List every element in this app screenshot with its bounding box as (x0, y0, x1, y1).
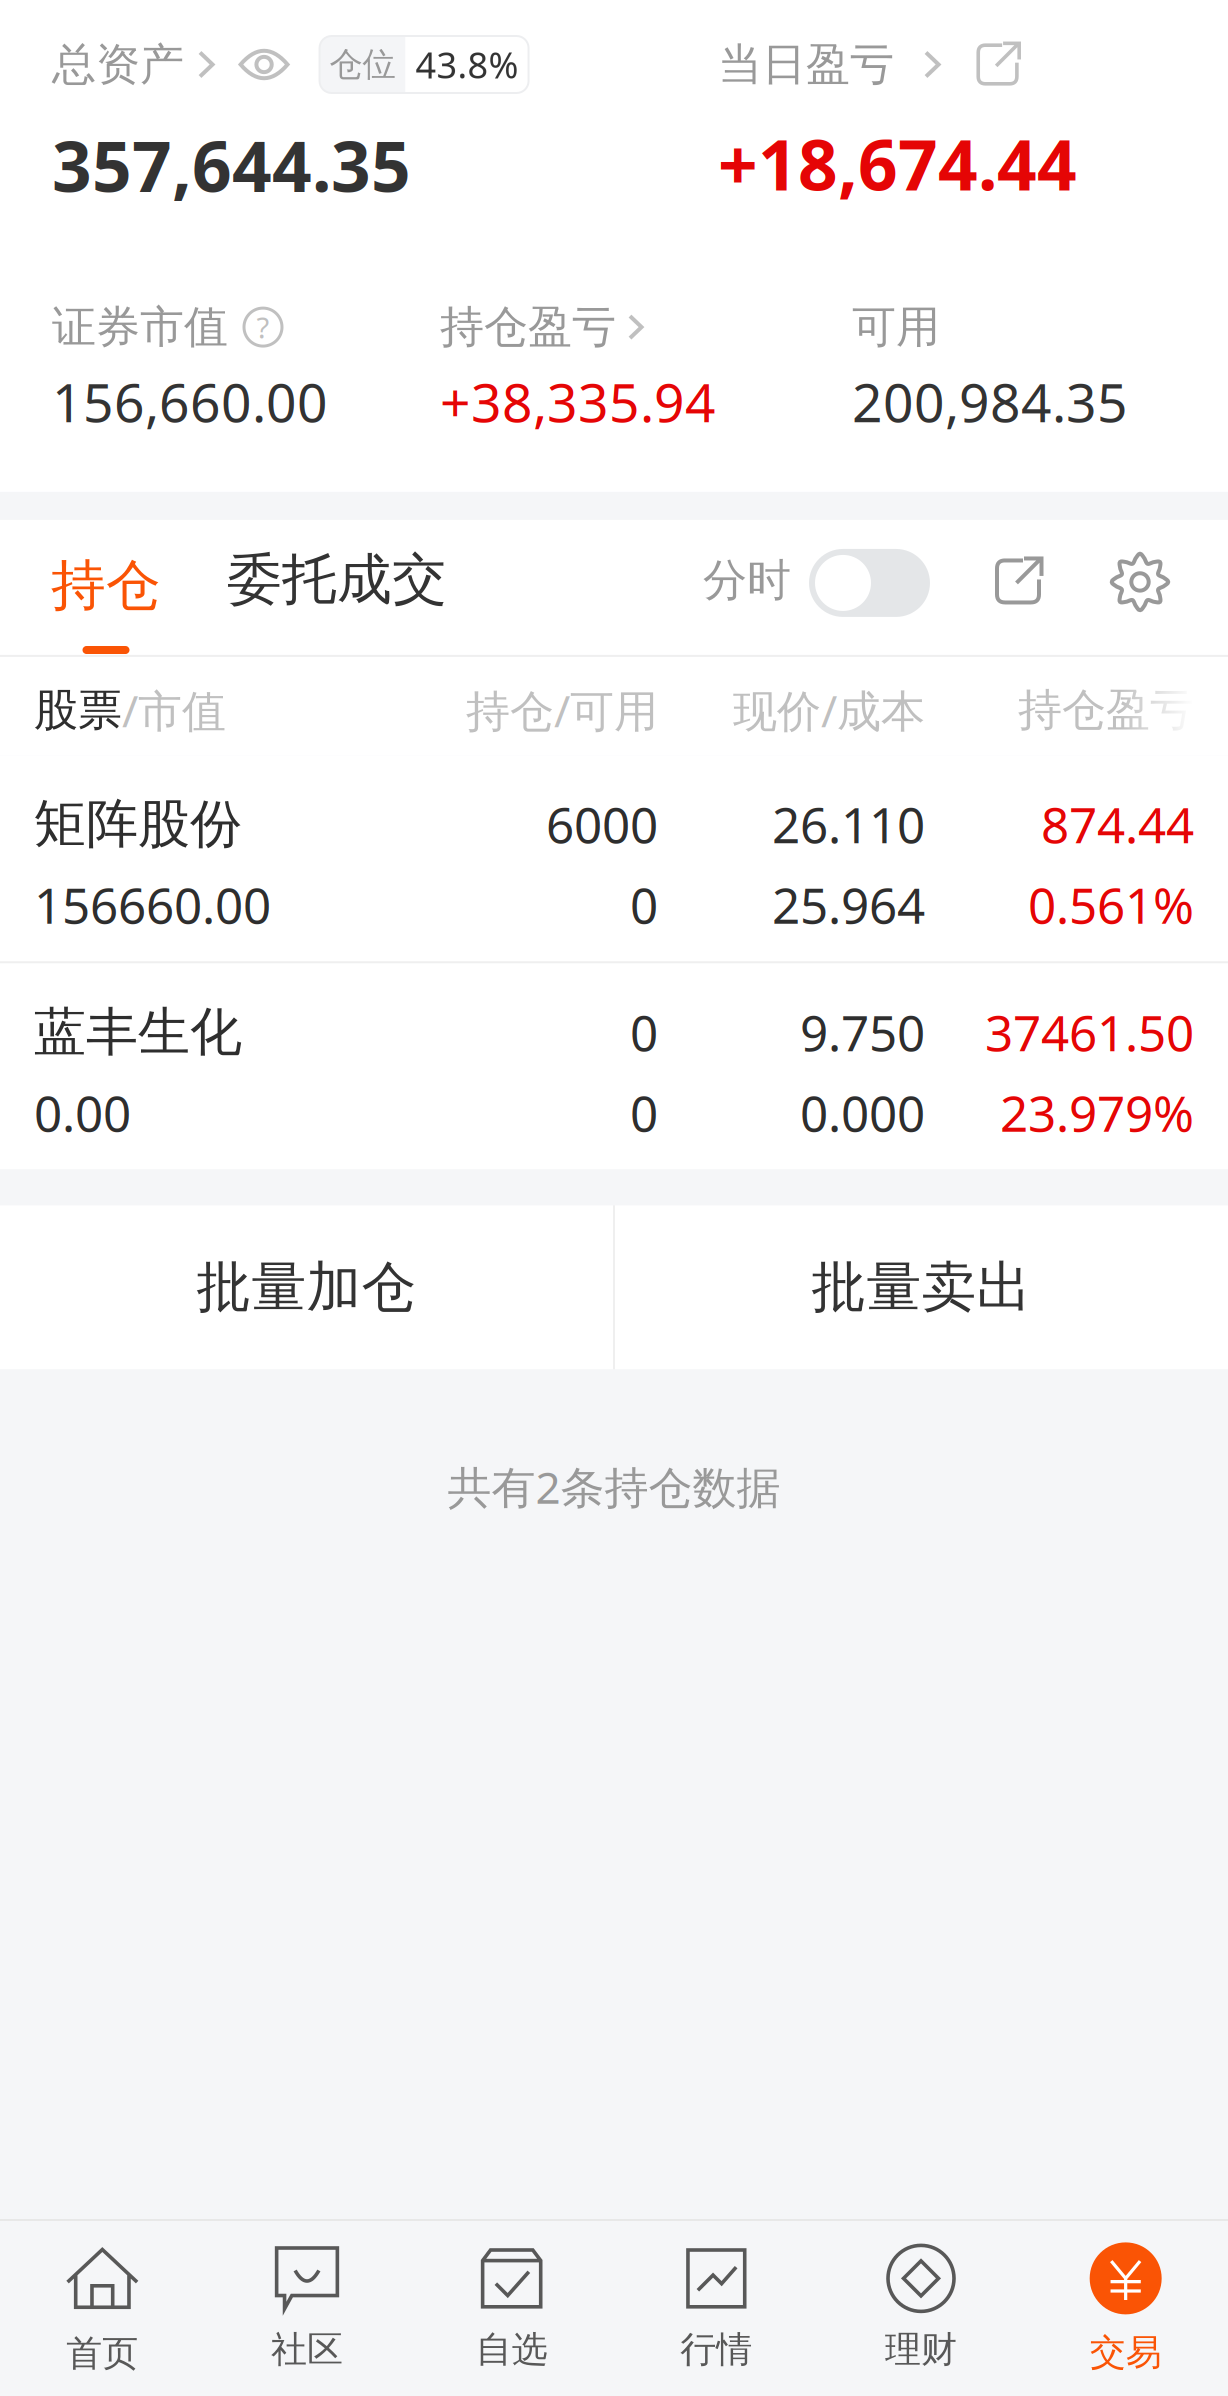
staticText: 0 (630, 872, 658, 937)
button[interactable]: 隐藏金额 (215, 47, 290, 82)
staticText: 首页 (66, 2331, 138, 2376)
staticText: 交易 (1090, 2330, 1162, 2375)
staticText: 6000 (546, 791, 658, 857)
button[interactable]: 批量加仓 (0, 1205, 613, 1369)
staticText: 9.750 (800, 999, 925, 1065)
staticText: 0.561% (1028, 872, 1194, 937)
staticText: 357,644.35 (52, 119, 411, 211)
button[interactable]: 理财 (819, 2221, 1023, 2396)
button[interactable]: 交易 (1023, 2221, 1228, 2396)
staticText: 0.00 (34, 1080, 131, 1145)
staticText: 分时 (703, 553, 791, 607)
staticText: 持仓/可用 (466, 681, 658, 739)
staticText: 现价/成本 (733, 681, 925, 739)
button[interactable]: 仓位 (290, 36, 529, 93)
staticText: 证券市值 (52, 300, 228, 354)
button[interactable]: 委托成交 (194, 546, 470, 629)
button[interactable]: 蓝丰生化 (0, 963, 1228, 1169)
button[interactable]: 持仓盈亏 (440, 300, 643, 354)
staticText: 共有2条持仓数据 (447, 1457, 780, 1516)
staticText: 仓位 (330, 44, 396, 85)
staticText: 理财 (885, 2327, 957, 2372)
staticText: 156660.00 (34, 872, 271, 937)
staticText: 批量加仓 (196, 1254, 416, 1321)
staticText: 委托成交 (227, 546, 447, 613)
staticText: 行情 (680, 2327, 752, 2372)
staticText: 23.979% (1000, 1080, 1194, 1145)
button[interactable]: 行情 (614, 2221, 819, 2396)
button[interactable]: 分享当日盈亏 (941, 41, 1021, 87)
button[interactable]: 当日盈亏 (718, 37, 941, 91)
button[interactable]: 矩阵股份 (0, 755, 1228, 961)
staticText: 156,660.00 (52, 366, 328, 437)
staticText: 持仓盈亏 (1018, 683, 1194, 737)
staticText: 批量卖出 (811, 1254, 1031, 1321)
staticText: 社区 (271, 2327, 343, 2372)
staticText: 持仓盈亏 (440, 300, 616, 354)
staticText: 当日盈亏 (718, 37, 894, 91)
staticText: 自选 (476, 2327, 548, 2372)
button[interactable]: 自选 (409, 2221, 614, 2396)
staticText: 200,984.35 (852, 366, 1128, 437)
staticText: 874.44 (1041, 791, 1194, 857)
button[interactable]: 持仓 (0, 521, 194, 654)
button[interactable]: 社区 (205, 2221, 409, 2396)
staticText: 蓝丰生化 (34, 1000, 242, 1064)
staticText: ? (256, 308, 269, 347)
button[interactable]: 分享 (930, 556, 1043, 618)
staticText: 25.964 (772, 872, 925, 937)
button[interactable]: 首页 (0, 2221, 205, 2396)
button[interactable]: 设置 (1043, 552, 1228, 623)
staticText: 26.110 (772, 791, 925, 857)
button[interactable]: 总资产 (52, 37, 215, 91)
button[interactable]: 批量卖出 (615, 1205, 1228, 1369)
staticText: 总资产 (52, 37, 184, 91)
staticText: 矩阵股份 (34, 792, 242, 856)
button[interactable]: 证券市值 (52, 300, 282, 354)
button[interactable]: 分时开关 (791, 549, 930, 626)
staticText: 0.000 (800, 1080, 925, 1145)
staticText: 可用 (852, 300, 940, 354)
staticText: /市值 (122, 681, 226, 739)
staticText: +38,335.94 (440, 366, 716, 437)
staticText: 股票 (34, 683, 122, 737)
staticText: 持仓 (51, 552, 161, 619)
staticText: 37461.50 (985, 999, 1194, 1065)
staticText: +18,674.44 (718, 117, 1077, 210)
staticText: 0 (630, 999, 658, 1065)
staticText: 0 (630, 1080, 658, 1145)
staticText: 43.8% (416, 41, 519, 88)
